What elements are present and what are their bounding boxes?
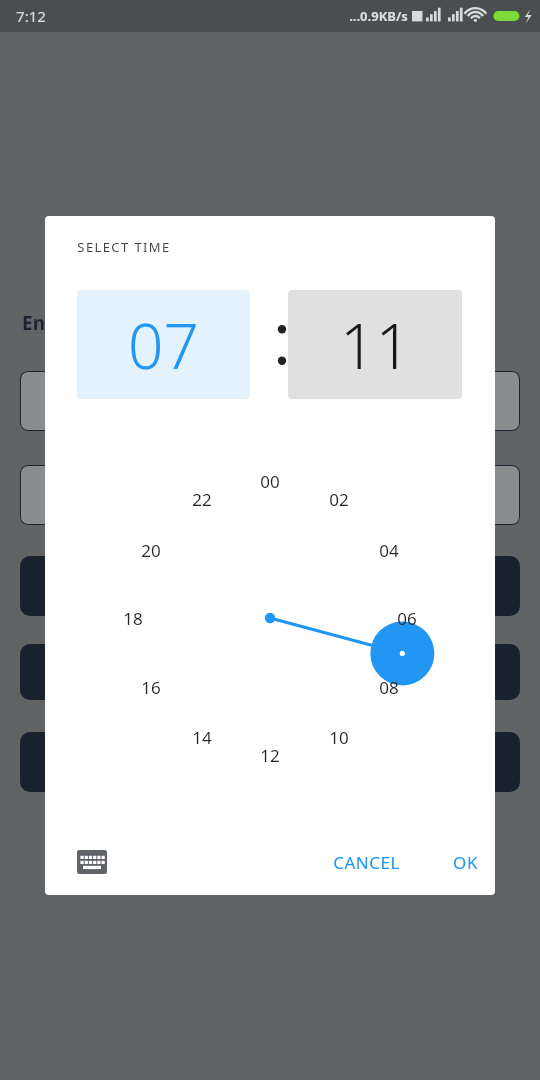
staticText: 00 [260, 470, 280, 493]
staticText: 20 [141, 539, 161, 562]
staticText: 08 [379, 676, 399, 699]
button[interactable]: 18 [109, 604, 157, 632]
staticText: 02 [329, 488, 349, 511]
staticText: 12 [260, 744, 280, 767]
button[interactable]: 04 [365, 536, 413, 564]
staticText: 18 [123, 607, 143, 630]
staticText: 11 [340, 303, 411, 387]
staticText: OK [453, 851, 478, 874]
staticText: Enter details [22, 310, 142, 336]
button[interactable]: 07 [77, 290, 250, 399]
button[interactable]: 22 [178, 485, 226, 513]
staticText: CANCEL [333, 851, 400, 874]
button[interactable]: Switch to text input [77, 850, 107, 874]
staticText: 7:12 [16, 6, 46, 26]
button[interactable]: 06 [383, 604, 431, 632]
staticText: 22 [192, 488, 212, 511]
button[interactable]: CANCEL [333, 840, 400, 884]
staticText: 07 [128, 303, 199, 387]
button[interactable]: OK [453, 840, 478, 884]
staticText: 04 [379, 539, 399, 562]
button[interactable]: 11 [288, 290, 462, 399]
staticText: 14 [192, 726, 212, 749]
button[interactable]: 02 [315, 485, 363, 513]
staticText: ...0.9KB/s [349, 7, 408, 25]
button[interactable]: 08 [365, 673, 413, 701]
button[interactable]: 00 [246, 467, 294, 495]
button[interactable]: 16 [127, 673, 175, 701]
button[interactable]: 10 [315, 723, 363, 751]
button[interactable]: 14 [178, 723, 226, 751]
button[interactable]: 12 [246, 741, 294, 769]
staticText: 16 [141, 676, 161, 699]
staticText: SELECT TIME [77, 238, 171, 256]
staticText: 10 [329, 726, 349, 749]
staticText: 06 [397, 607, 417, 630]
button[interactable]: 20 [127, 536, 175, 564]
